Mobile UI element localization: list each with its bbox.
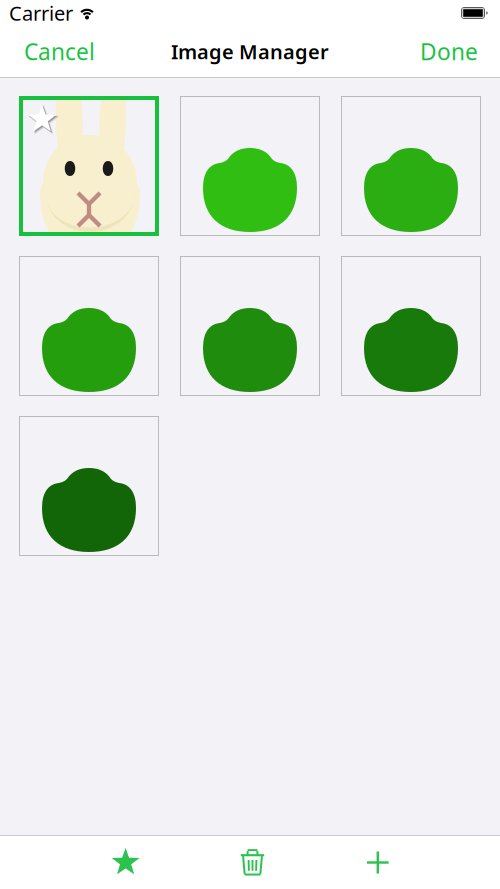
button[interactable] — [341, 96, 481, 236]
button[interactable] — [19, 256, 159, 396]
button[interactable]: Delete — [216, 836, 289, 888]
staticText: Cancel — [24, 36, 95, 66]
button[interactable] — [19, 96, 159, 236]
button[interactable]: Favorite — [87, 836, 164, 888]
button[interactable] — [180, 96, 320, 236]
button[interactable]: Done — [406, 26, 500, 77]
staticText: Carrier — [9, 0, 73, 26]
button[interactable]: Add — [343, 836, 413, 888]
button[interactable] — [19, 416, 159, 556]
button[interactable] — [180, 256, 320, 396]
staticText: Image Manager — [171, 38, 329, 65]
button[interactable] — [341, 256, 481, 396]
button[interactable]: Cancel — [0, 26, 109, 77]
staticText: Done — [420, 36, 478, 66]
